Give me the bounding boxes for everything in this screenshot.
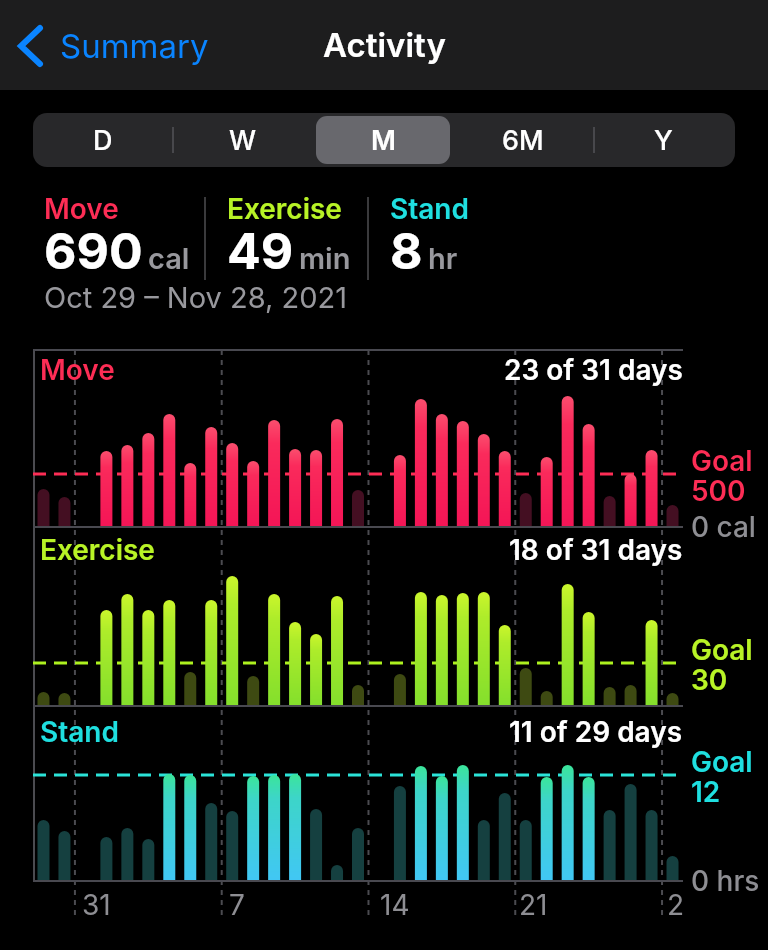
staticText: 18 of 31 days xyxy=(509,533,683,567)
staticText: 31 xyxy=(82,888,111,922)
button[interactable]: D xyxy=(36,116,170,164)
button[interactable]: Y xyxy=(596,116,730,164)
button[interactable]: 6M xyxy=(456,116,590,164)
staticText: cal xyxy=(148,241,190,276)
staticText: Exercise xyxy=(227,192,342,226)
staticText: Oct 29 – Nov 28, 2021 xyxy=(44,280,347,315)
staticText: W xyxy=(229,124,257,157)
staticText: 7 xyxy=(229,888,245,922)
staticText: Move xyxy=(44,192,119,226)
staticText: 0 hrs xyxy=(691,864,760,898)
staticText: 2 xyxy=(667,888,685,922)
staticText: min xyxy=(299,241,351,276)
staticText: Goal 12 xyxy=(691,745,753,809)
staticText: 0 cal xyxy=(691,510,756,544)
staticText: Activity xyxy=(323,25,446,65)
staticText: M xyxy=(371,124,396,157)
staticText: 23 of 31 days xyxy=(504,353,683,387)
staticText: 11 of 29 days xyxy=(509,715,683,749)
button[interactable]: M xyxy=(316,116,450,164)
staticText: Stand xyxy=(390,192,469,226)
staticText: Move xyxy=(40,353,115,387)
staticText: Stand xyxy=(40,715,119,749)
staticText: 21 xyxy=(519,888,548,922)
staticText: Y xyxy=(654,124,673,157)
staticText: 49 xyxy=(227,221,294,281)
staticText: Goal 30 xyxy=(691,633,753,697)
staticText: 6M xyxy=(502,124,544,157)
staticText: 14 xyxy=(380,888,410,922)
staticText: D xyxy=(93,124,113,157)
staticText: Goal 500 xyxy=(691,444,753,508)
button[interactable]: Summary xyxy=(12,18,209,74)
staticText: 690 xyxy=(44,221,143,281)
staticText: hr xyxy=(428,241,458,276)
staticText: 8 xyxy=(390,221,423,281)
button[interactable]: W xyxy=(176,116,310,164)
staticText: Exercise xyxy=(40,533,155,567)
staticText: Summary xyxy=(60,26,209,66)
